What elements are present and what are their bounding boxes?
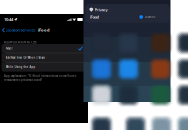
staticText: iFood (38, 27, 50, 33)
staticText: Ask Next Time Or When I Share (5, 56, 45, 59)
staticText: While Using the App (5, 65, 35, 69)
staticText: Location (144, 15, 155, 19)
button[interactable]: While Using the App (1, 62, 86, 72)
staticText: App explanation: “O iFood irá monitorar … (4, 74, 76, 78)
staticText: Never (5, 47, 12, 50)
staticText: 10:44 (4, 17, 13, 22)
staticText: restaurantes próximos a você” (4, 78, 42, 82)
staticText: iFood (89, 14, 99, 20)
staticText: Privacy (95, 7, 108, 12)
button[interactable]: Never (1, 44, 86, 53)
button[interactable]: Location Services (2, 27, 35, 33)
button[interactable]: Ask Next Time Or When I Share (1, 53, 86, 62)
staticText: Location Services (5, 27, 35, 33)
staticText: ALLOW LOCATION ACCESS (4, 40, 36, 44)
